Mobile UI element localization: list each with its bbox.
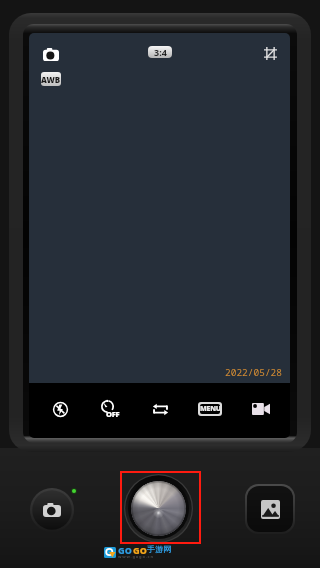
button[interactable]: Video mode xyxy=(244,392,278,426)
staticText: 2022/05/28 xyxy=(225,366,283,379)
button[interactable]: Crop xyxy=(258,41,282,65)
staticText: 手游网 xyxy=(147,544,171,554)
button[interactable]: Menu xyxy=(193,392,227,426)
button[interactable]: Shutter xyxy=(131,481,186,536)
staticText: OFF xyxy=(106,409,120,419)
staticText: GO xyxy=(133,544,147,556)
staticText: AWB xyxy=(41,74,61,85)
button[interactable]: Flash off xyxy=(43,392,77,426)
staticText: 3:4 xyxy=(154,46,167,58)
button[interactable]: Self timer off xyxy=(93,392,127,426)
button[interactable]: AWB xyxy=(41,72,61,86)
staticText: MENU xyxy=(200,404,220,414)
button[interactable]: Camera xyxy=(30,488,74,532)
button[interactable]: Camera mode xyxy=(37,41,64,68)
button[interactable]: Switch camera xyxy=(143,392,177,426)
staticText: www.gogo.cn xyxy=(118,554,154,559)
staticText: GO xyxy=(118,544,132,556)
button[interactable]: Gallery xyxy=(245,484,295,534)
button[interactable]: 3:4 xyxy=(148,46,172,58)
